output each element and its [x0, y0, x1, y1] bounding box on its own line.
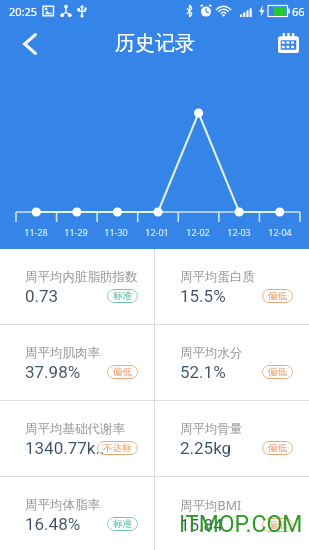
staticText: 12-01	[145, 226, 169, 238]
staticText: 周平均骨量	[180, 421, 243, 437]
staticText: 周平均蛋白质	[180, 269, 255, 285]
button[interactable]: Calendar	[265, 22, 309, 65]
staticText: 12-03	[227, 226, 251, 238]
staticText: 20:25	[9, 4, 38, 19]
staticText: 66	[292, 4, 305, 19]
staticText: 周平均肌肉率	[25, 345, 100, 361]
staticText: 周平均体脂率	[25, 497, 100, 513]
staticText: 11-28	[24, 226, 48, 238]
staticText: 2.25kg	[180, 438, 232, 458]
button[interactable]: 周平均内脏脂肪指数	[0, 249, 154, 324]
staticText: 偏低	[268, 519, 287, 531]
staticText: 周平均基础代谢率	[25, 421, 125, 437]
staticText: 偏低	[268, 290, 287, 302]
staticText: 周平均内脏脂肪指数	[25, 269, 138, 285]
staticText: 偏低	[113, 366, 132, 378]
button[interactable]: 周平均体脂率	[0, 477, 154, 550]
staticText: 偏低	[268, 442, 287, 454]
staticText: 0.73	[25, 286, 59, 306]
button[interactable]: 周平均基础代谢率	[0, 401, 154, 476]
button[interactable]: 周平均骨量	[155, 401, 309, 476]
staticText: 37.98%	[25, 362, 81, 382]
button[interactable]: Back	[9, 22, 53, 65]
button[interactable]: 周平均水分	[155, 325, 309, 400]
staticText: 周平均水分	[180, 345, 243, 361]
staticText: 标准	[113, 518, 132, 530]
staticText: 1340.77k..	[25, 438, 105, 458]
staticText: 11-29	[64, 226, 88, 238]
staticText: 52.1%	[180, 362, 226, 382]
button[interactable]: 周平均BMI	[155, 477, 309, 550]
staticText: 周平均BMI	[180, 497, 242, 514]
button[interactable]: 周平均蛋白质	[155, 249, 309, 324]
staticText: 15.5%	[180, 286, 226, 306]
staticText: ITMOP.COM	[179, 511, 303, 538]
staticText: 偏低	[268, 366, 287, 378]
staticText: 12-04	[268, 226, 292, 238]
button[interactable]: 周平均肌肉率	[0, 325, 154, 400]
staticText: 15.84	[180, 515, 223, 535]
staticText: 不达标	[103, 442, 132, 454]
staticText: 11-30	[104, 226, 128, 238]
staticText: 历史记录	[115, 31, 195, 56]
staticText: 16.48%	[25, 514, 81, 534]
staticText: 标准	[113, 290, 132, 302]
staticText: 12-02	[186, 226, 210, 238]
